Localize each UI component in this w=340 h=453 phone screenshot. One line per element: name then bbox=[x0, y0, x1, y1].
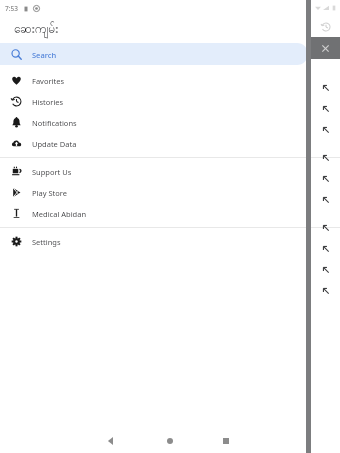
button[interactable]: Favorites bbox=[0, 70, 340, 91]
button[interactable]: Collapse bbox=[306, 168, 340, 189]
button[interactable]: Collapse bbox=[306, 217, 340, 238]
staticText: Support Us bbox=[32, 167, 72, 177]
staticText: Medical Abidan bbox=[32, 209, 87, 219]
staticText: Notifications bbox=[32, 118, 77, 128]
button[interactable]: Play Store bbox=[0, 182, 340, 203]
staticText: Favorites bbox=[32, 76, 65, 86]
button[interactable]: Home bbox=[160, 431, 180, 451]
button[interactable]: Search bbox=[0, 43, 308, 65]
button[interactable]: Support Us bbox=[0, 161, 340, 182]
staticText: Histories bbox=[32, 97, 64, 107]
staticText: ဆေးကျမ်း bbox=[14, 21, 59, 39]
button[interactable]: Collapse bbox=[306, 238, 340, 259]
button[interactable]: Collapse bbox=[306, 280, 340, 301]
button[interactable]: Close bbox=[306, 37, 340, 59]
button[interactable]: Back bbox=[101, 431, 121, 451]
staticText: Settings bbox=[32, 237, 61, 247]
button[interactable]: Collapse bbox=[306, 147, 340, 168]
button[interactable]: Settings bbox=[0, 231, 340, 252]
button[interactable]: Recents bbox=[216, 431, 236, 451]
button[interactable]: Histories bbox=[0, 91, 340, 112]
staticText: Play Store bbox=[32, 188, 67, 198]
button[interactable]: Recent bbox=[306, 16, 340, 37]
button[interactable]: Collapse bbox=[306, 119, 340, 140]
button[interactable]: Update Data bbox=[0, 133, 340, 154]
button[interactable]: Collapse bbox=[306, 77, 340, 98]
staticText: 7:53 bbox=[5, 4, 18, 13]
button[interactable]: Notifications bbox=[0, 112, 340, 133]
staticText: Search bbox=[32, 50, 57, 60]
button[interactable]: Medical Abidan bbox=[0, 203, 340, 224]
button[interactable]: Collapse bbox=[306, 98, 340, 119]
button[interactable]: Collapse bbox=[306, 259, 340, 280]
button[interactable]: Collapse bbox=[306, 189, 340, 210]
staticText: Update Data bbox=[32, 139, 77, 149]
